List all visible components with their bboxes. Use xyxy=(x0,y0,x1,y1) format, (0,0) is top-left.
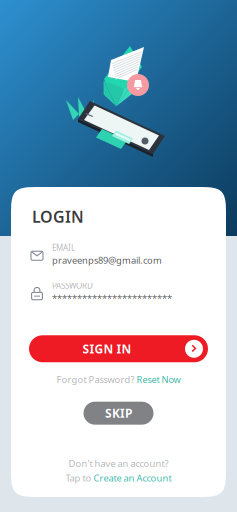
staticText: Tap to xyxy=(65,472,93,484)
staticText: Reset Now xyxy=(136,373,180,386)
staticText: ************************ xyxy=(52,292,172,304)
button[interactable]: SKIP xyxy=(83,402,153,425)
button[interactable]: Create an Account xyxy=(93,472,171,484)
staticText: Don't have an account? xyxy=(68,457,168,470)
staticText: LOGIN xyxy=(32,206,84,227)
staticText: PASSWORD xyxy=(52,280,93,291)
staticText: EMAIL xyxy=(52,242,75,253)
staticText: Forgot Password? xyxy=(56,373,136,386)
staticText: SIGN IN xyxy=(82,341,131,357)
staticText: Create an Account xyxy=(93,472,171,484)
staticText: praveenps89@gmail.com xyxy=(52,254,162,266)
button[interactable]: SIGN IN xyxy=(29,335,208,362)
button[interactable]: Reset Now xyxy=(136,373,180,386)
staticText: SKIP xyxy=(105,405,132,421)
